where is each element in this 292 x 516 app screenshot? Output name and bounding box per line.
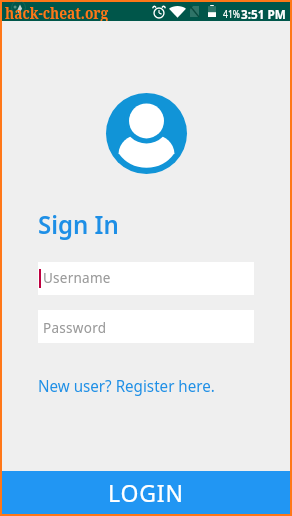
button[interactable]: Sign In [38, 207, 120, 241]
staticText: LOGIN [108, 477, 184, 508]
button[interactable]: Password [38, 310, 254, 343]
button[interactable]: New user? Register here. [38, 375, 215, 397]
staticText: hack-cheat.org [5, 2, 109, 21]
other: Profile [106, 93, 187, 174]
staticText: 3:51 PM [241, 5, 286, 23]
button[interactable]: LOGIN [2, 471, 290, 514]
staticText: Password [43, 319, 107, 337]
button[interactable]: Username [38, 262, 254, 295]
staticText: 41% [223, 7, 240, 21]
staticText: Username [43, 269, 111, 287]
